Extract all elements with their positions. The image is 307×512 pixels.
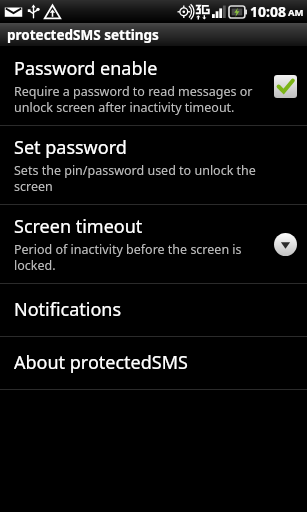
staticText: Sets the pin/password used to unlock the… bbox=[14, 162, 297, 194]
staticText: protectedSMS settings bbox=[7, 26, 159, 44]
staticText: Password enable bbox=[14, 56, 158, 81]
staticText: 10:08 bbox=[250, 2, 286, 21]
button[interactable]: Screen timeout options bbox=[273, 232, 297, 256]
staticText: AM bbox=[288, 6, 304, 19]
button[interactable]: About protectedSMS bbox=[0, 337, 307, 389]
staticText: About protectedSMS bbox=[14, 350, 188, 375]
button[interactable]: Password enable checkbox bbox=[273, 74, 297, 98]
staticText: Notifications bbox=[14, 297, 122, 322]
staticText: Require a password to read messages or u… bbox=[14, 83, 265, 115]
button[interactable]: Notifications bbox=[0, 284, 307, 336]
staticText: Period of inactivity before the screen i… bbox=[14, 241, 265, 273]
staticText: Set password bbox=[14, 135, 127, 160]
staticText: Screen timeout bbox=[14, 214, 143, 239]
button[interactable]: Password enable bbox=[0, 47, 307, 125]
button[interactable]: Screen timeout bbox=[0, 205, 307, 283]
button[interactable]: Set password bbox=[0, 126, 307, 204]
